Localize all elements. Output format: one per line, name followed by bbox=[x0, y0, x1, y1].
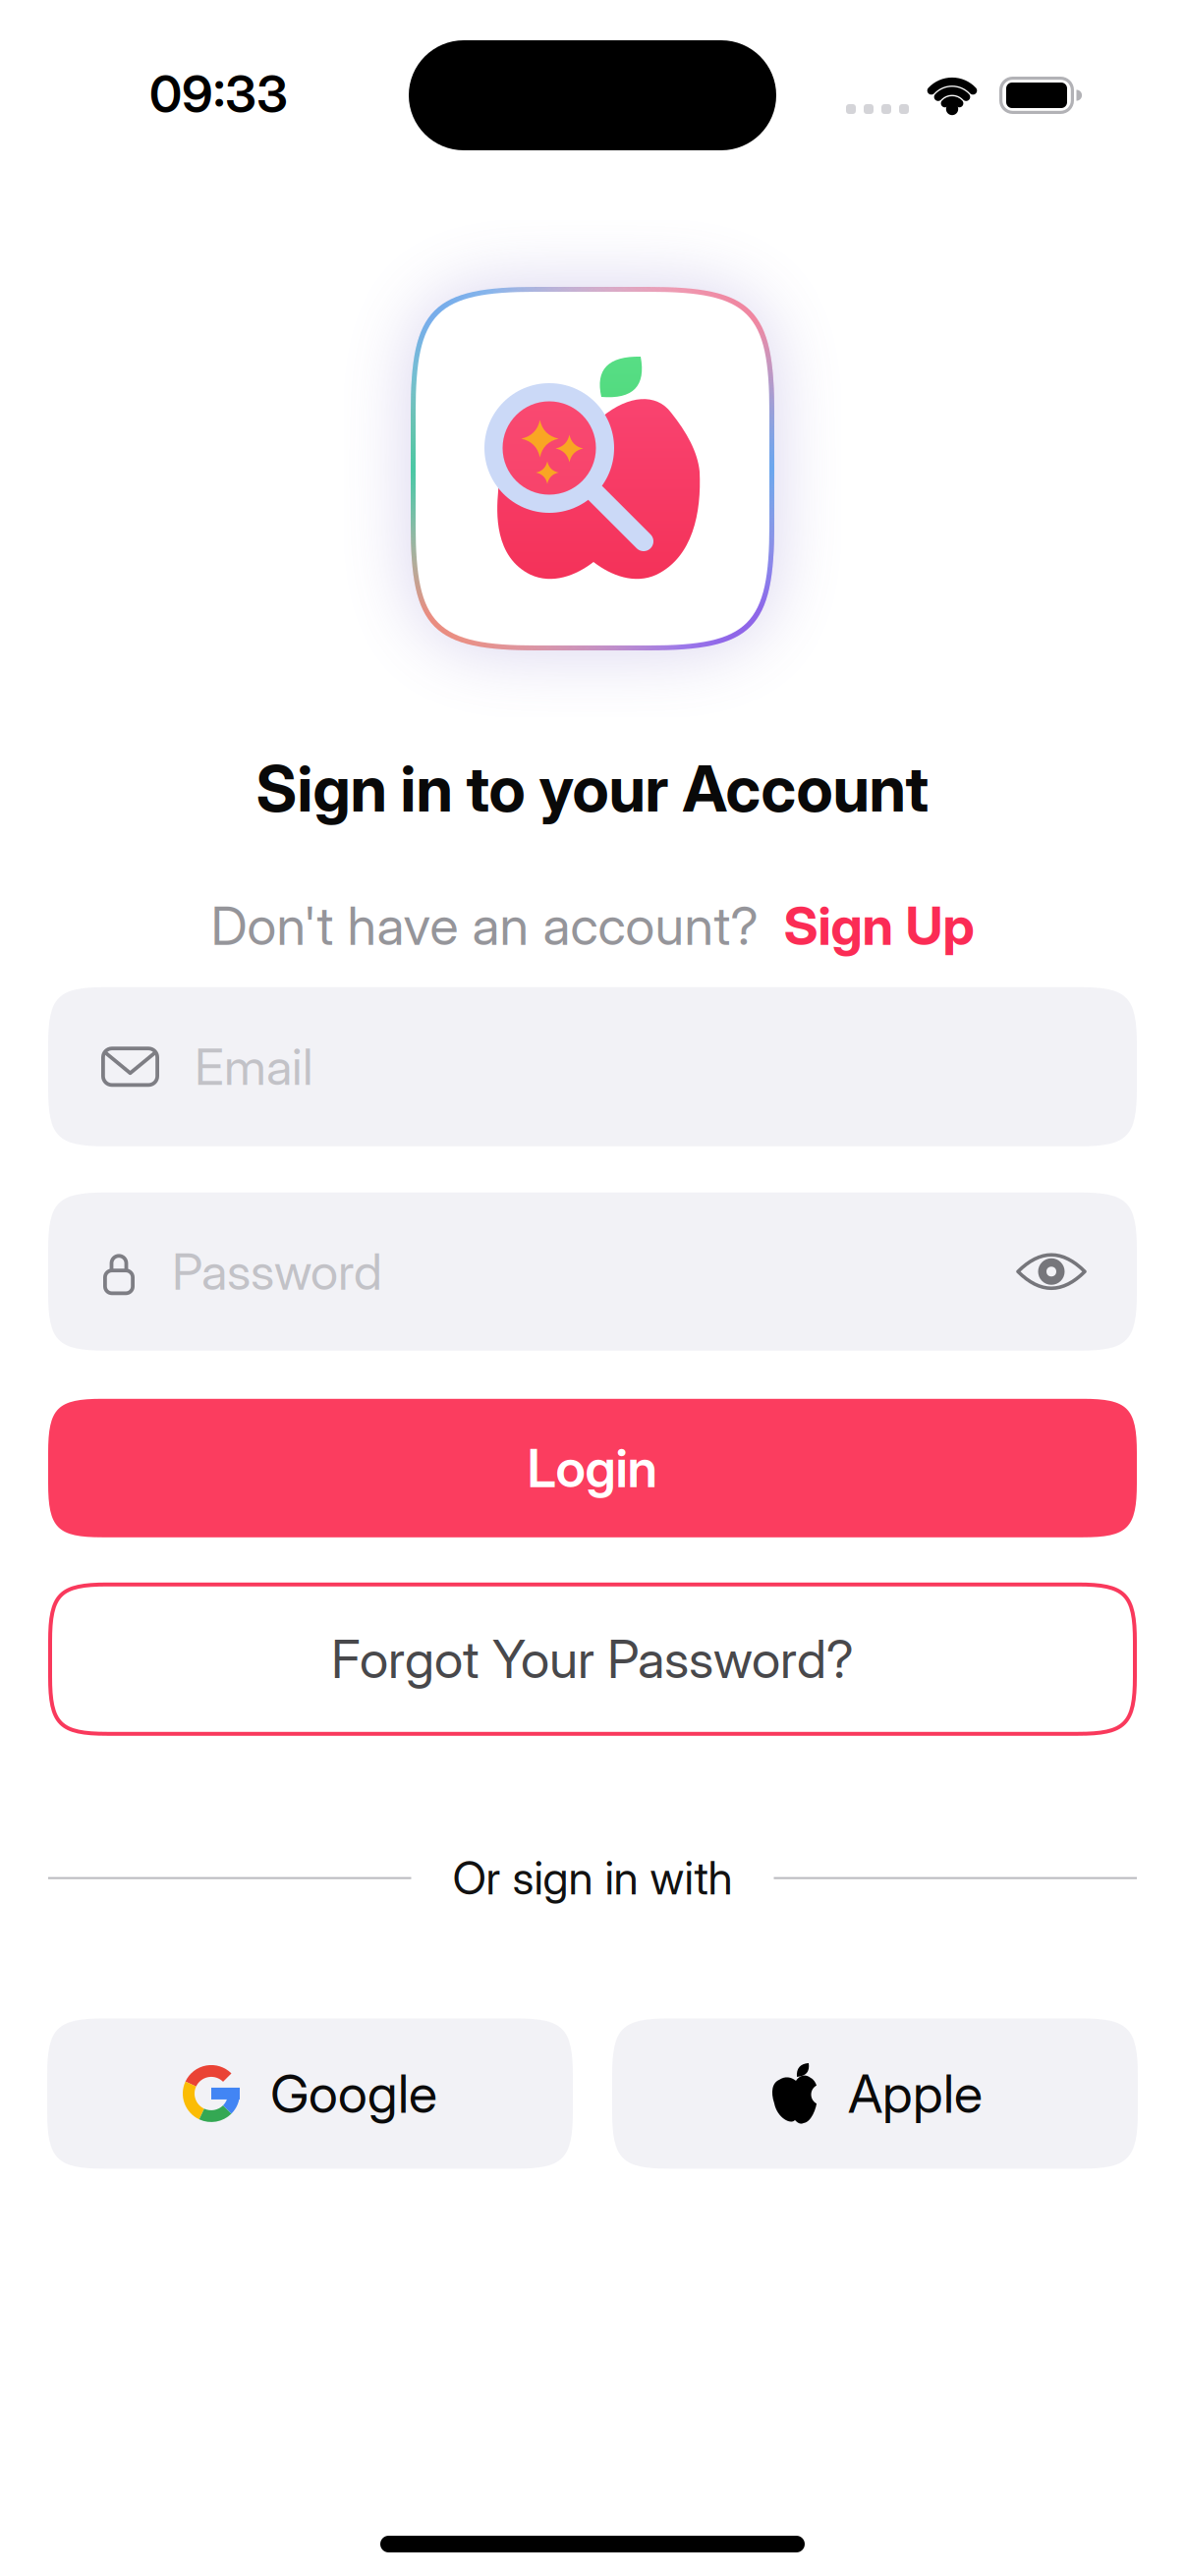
staticText: Apple bbox=[848, 2061, 983, 2126]
staticText: Or sign in with bbox=[452, 1851, 733, 1905]
button[interactable]: Password bbox=[48, 1193, 1137, 1351]
button[interactable]: Show password bbox=[1016, 1250, 1087, 1293]
staticText: Password bbox=[172, 1241, 382, 1302]
staticText: Email bbox=[195, 1036, 313, 1097]
button[interactable]: Sign Up bbox=[784, 893, 974, 958]
staticText: Forgot Your Password? bbox=[331, 1628, 854, 1691]
staticText: Sign in to your Account bbox=[256, 751, 929, 827]
staticText: Don't have an account? bbox=[211, 893, 758, 958]
button[interactable]: Forgot Your Password? bbox=[48, 1583, 1137, 1736]
staticText: 09:33 bbox=[149, 63, 288, 125]
staticText: Google bbox=[270, 2061, 437, 2126]
button[interactable]: Login bbox=[48, 1399, 1137, 1537]
button[interactable]: Apple bbox=[612, 2018, 1138, 2169]
button[interactable]: Google bbox=[47, 2018, 573, 2169]
staticText: Login bbox=[527, 1436, 658, 1500]
staticText: Sign Up bbox=[784, 893, 974, 958]
button[interactable]: Email bbox=[48, 987, 1137, 1146]
